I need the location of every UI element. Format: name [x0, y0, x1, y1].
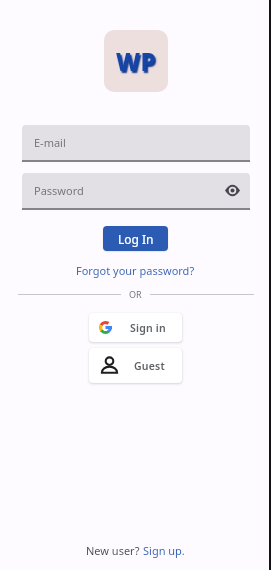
button[interactable]: Guest [89, 348, 182, 383]
button[interactable]: Forgot your password? [76, 263, 195, 278]
button[interactable]: Password [22, 173, 250, 210]
staticText: OR [129, 288, 142, 300]
button[interactable]: Sign up. [143, 543, 185, 558]
staticText: WP [116, 45, 157, 78]
staticText: Password [34, 183, 84, 198]
staticText: Guest [134, 359, 165, 373]
button[interactable]: Log In [103, 226, 168, 251]
staticText: Sign up. [143, 543, 185, 558]
staticText: E-mail [34, 135, 66, 150]
button[interactable]: Sign in [89, 313, 182, 342]
staticText: Log In [118, 231, 154, 247]
button[interactable]: E-mail [22, 125, 250, 162]
staticText: Sign in [130, 321, 166, 335]
staticText: New user? [86, 543, 143, 558]
staticText: Forgot your password? [76, 263, 195, 278]
